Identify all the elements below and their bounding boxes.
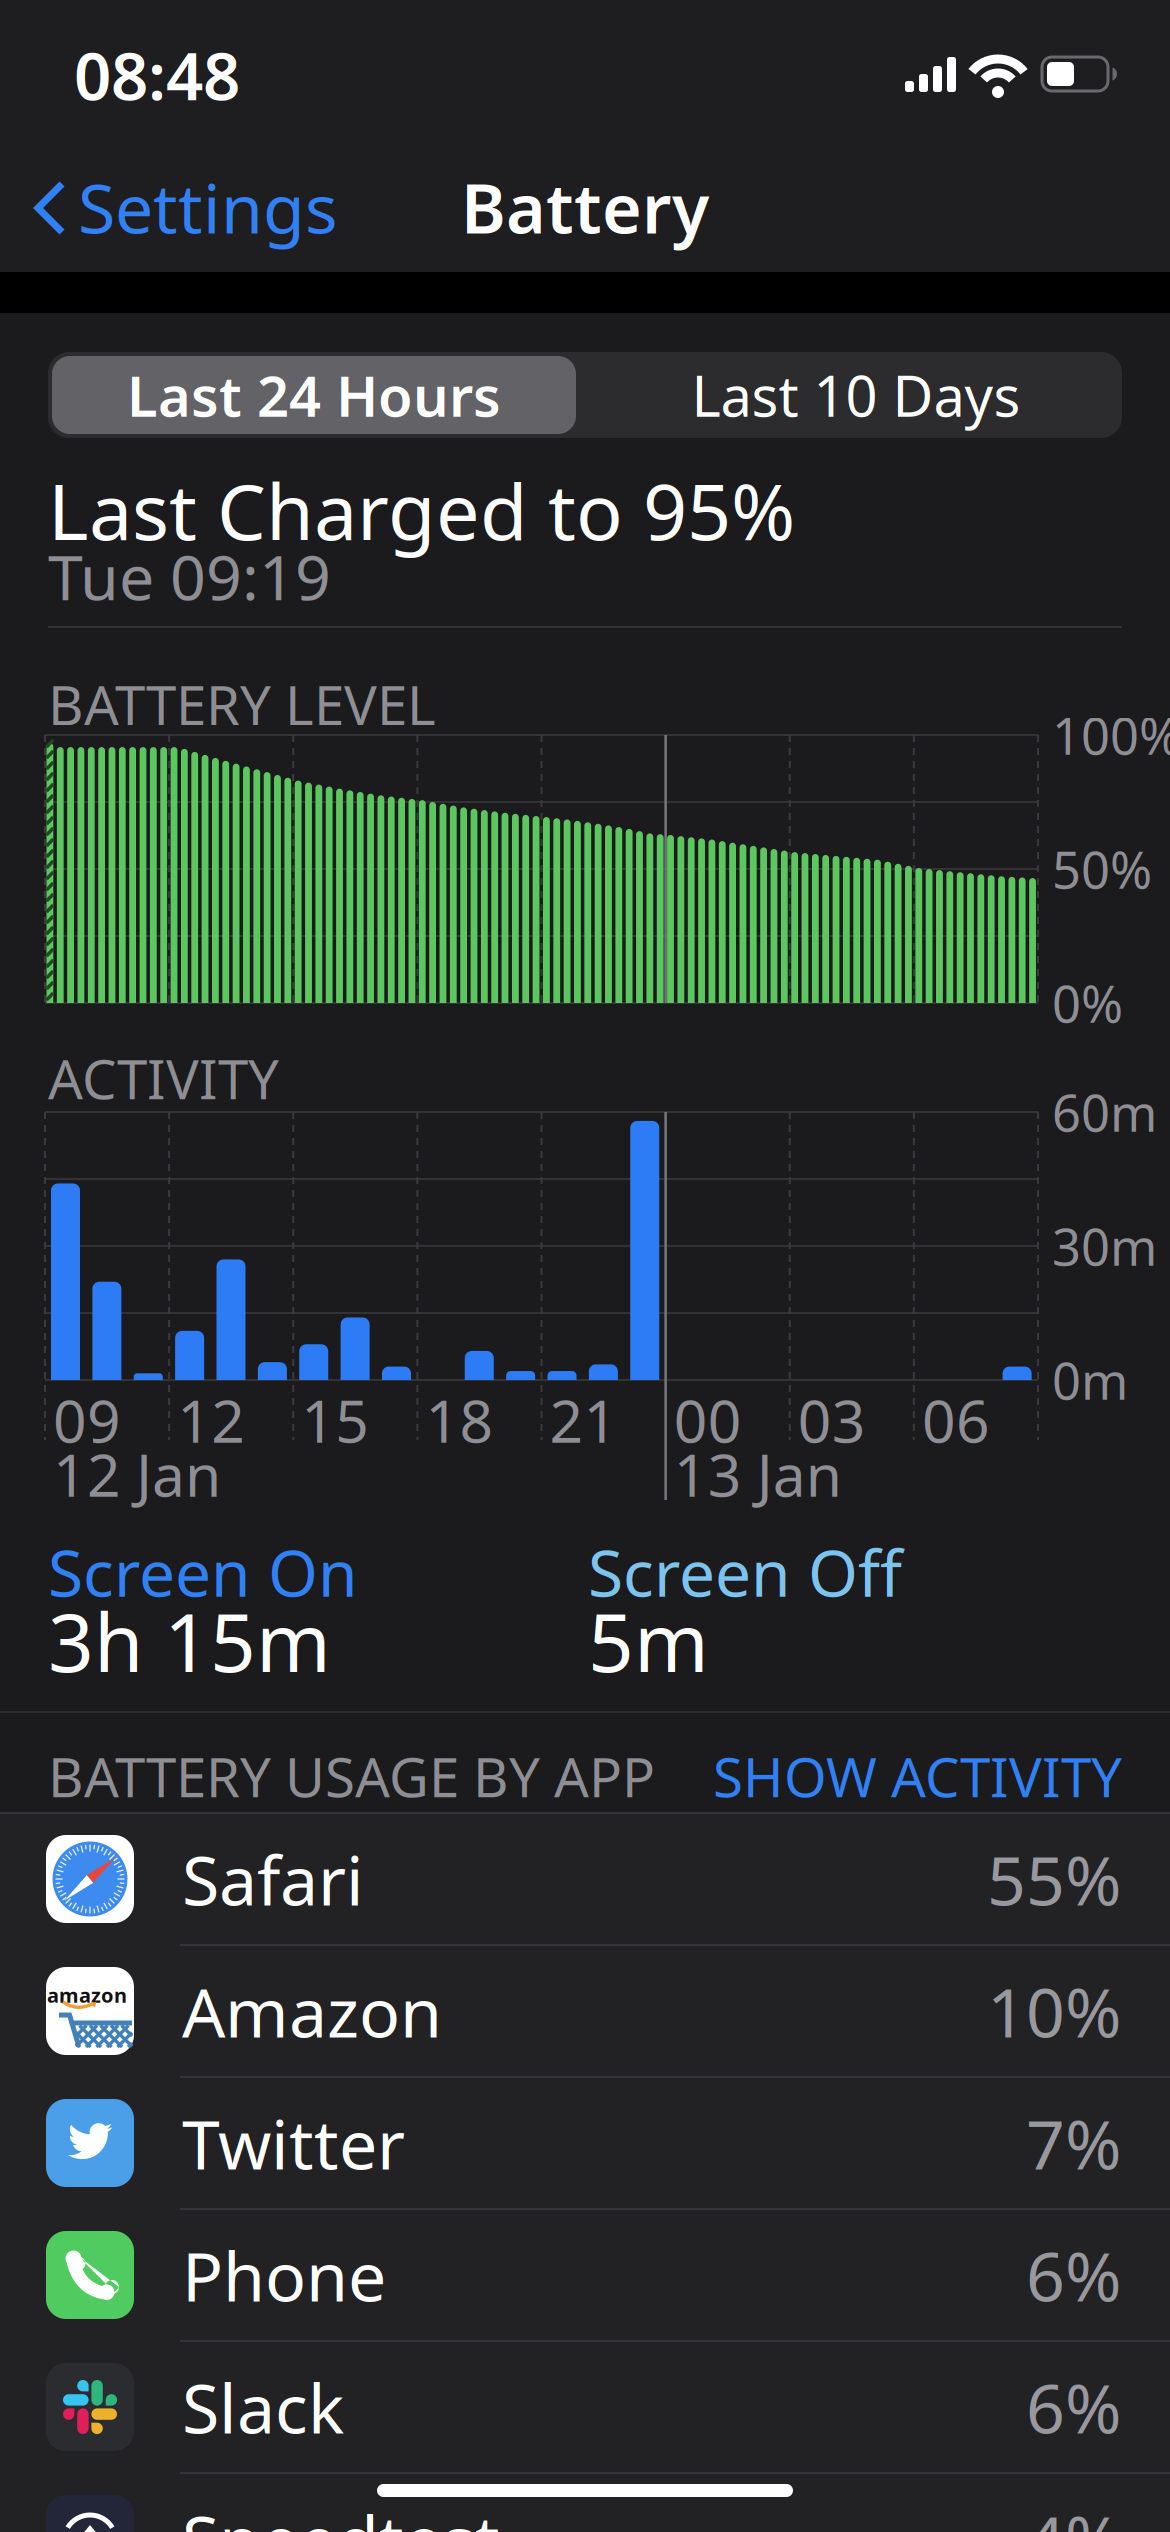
button[interactable]: amazon bbox=[0, 1945, 1170, 2077]
staticText: 4% bbox=[1026, 2494, 1122, 2532]
button[interactable]: Safari bbox=[0, 1813, 1170, 1945]
staticText: 7% bbox=[1026, 2098, 1122, 2188]
staticText: Phone bbox=[182, 2230, 386, 2320]
staticText: BATTERY LEVEL bbox=[48, 668, 436, 740]
staticText: 10% bbox=[987, 1966, 1122, 2056]
staticText: Battery bbox=[461, 162, 709, 252]
staticText: 18 bbox=[425, 1381, 493, 1459]
staticText: 15 bbox=[301, 1381, 369, 1459]
staticText: 03 bbox=[798, 1381, 866, 1459]
staticText: 6% bbox=[1026, 2362, 1122, 2452]
staticText: Safari bbox=[182, 1834, 364, 1924]
staticText: 3h 15m bbox=[48, 1588, 331, 1694]
button[interactable]: Phone bbox=[0, 2209, 1170, 2341]
staticText: amazon bbox=[47, 1982, 127, 2008]
staticText: Amazon bbox=[182, 1966, 442, 2056]
staticText: 13 Jan bbox=[674, 1435, 842, 1513]
staticText: 0m bbox=[1052, 1346, 1128, 1414]
staticText: ACTIVITY bbox=[48, 1042, 279, 1114]
staticText: 5m bbox=[588, 1588, 709, 1694]
button[interactable]: Speedtest bbox=[0, 2473, 1170, 2532]
staticText: 08:48 bbox=[74, 32, 240, 118]
staticText: Last Charged to 95% bbox=[48, 459, 795, 561]
staticText: 6% bbox=[1026, 2230, 1122, 2320]
staticText: Tue 09:19 bbox=[48, 534, 331, 618]
staticText: Screen Off bbox=[588, 1529, 902, 1614]
button[interactable]: Back to Settings bbox=[30, 175, 330, 241]
staticText: 12 bbox=[177, 1381, 245, 1459]
staticText: 21 bbox=[549, 1381, 617, 1459]
button[interactable]: SHOW ACTIVITY bbox=[622, 1746, 1122, 1806]
staticText: BATTERY USAGE BY APP bbox=[48, 1740, 655, 1812]
button[interactable]: Screen Off bbox=[588, 1542, 1008, 1602]
button[interactable]: Last 24 Hours bbox=[52, 356, 576, 434]
staticText: Settings bbox=[78, 162, 338, 252]
button[interactable]: Slack bbox=[0, 2341, 1170, 2473]
staticText: 06 bbox=[922, 1381, 990, 1459]
staticText: 30m bbox=[1052, 1212, 1157, 1280]
button[interactable]: Twitter bbox=[0, 2077, 1170, 2209]
staticText: 09 bbox=[53, 1381, 121, 1459]
staticText: Last 10 Days bbox=[691, 358, 1020, 432]
staticText: 0% bbox=[1052, 969, 1123, 1037]
staticText: 60m bbox=[1052, 1078, 1157, 1146]
staticText: 50% bbox=[1052, 835, 1152, 903]
staticText: Twitter bbox=[182, 2098, 405, 2188]
staticText: 55% bbox=[987, 1834, 1122, 1924]
staticText: Screen On bbox=[48, 1529, 358, 1614]
staticText: 00 bbox=[674, 1381, 742, 1459]
staticText: 12 Jan bbox=[53, 1435, 221, 1513]
staticText: 100% bbox=[1052, 701, 1170, 769]
staticText: Speedtest bbox=[182, 2494, 500, 2532]
staticText: Last 24 Hours bbox=[127, 358, 501, 432]
staticText: Slack bbox=[182, 2362, 344, 2452]
staticText: SHOW ACTIVITY bbox=[713, 1740, 1122, 1812]
button[interactable]: Last 10 Days bbox=[594, 356, 1118, 434]
button[interactable]: Screen On bbox=[48, 1542, 468, 1602]
